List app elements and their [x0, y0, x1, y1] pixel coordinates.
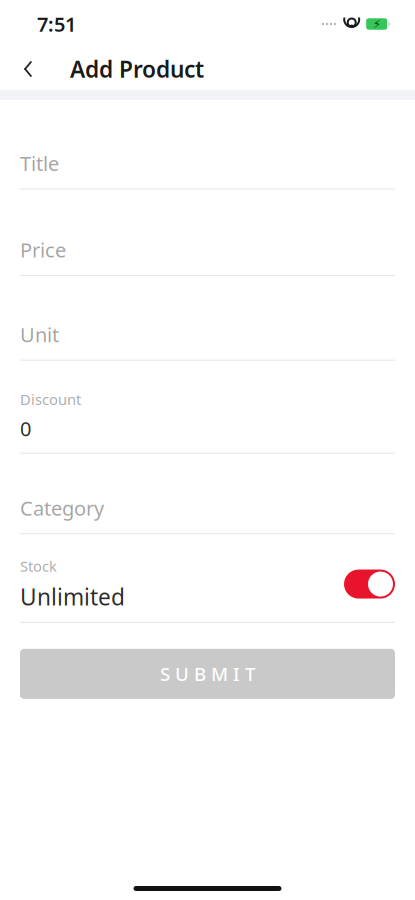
staticText: 0 — [20, 415, 31, 442]
staticText: Unlimited — [20, 582, 125, 612]
button[interactable]: S U B M I T — [20, 649, 395, 699]
staticText: Price — [20, 237, 66, 263]
staticText: Stock — [20, 556, 57, 576]
staticText: Discount — [20, 390, 81, 409]
staticText: Unit — [20, 321, 59, 348]
staticText: 7:51 — [37, 11, 76, 37]
staticText: Title — [20, 150, 59, 177]
staticText: Add Product — [70, 54, 204, 84]
staticText: Category — [20, 495, 104, 521]
button[interactable]: Back — [6, 47, 50, 91]
button[interactable]: Unlimited stock toggle — [344, 570, 395, 599]
staticText: ⚡︎ — [373, 17, 381, 31]
staticText: S U B M I T — [160, 661, 255, 686]
